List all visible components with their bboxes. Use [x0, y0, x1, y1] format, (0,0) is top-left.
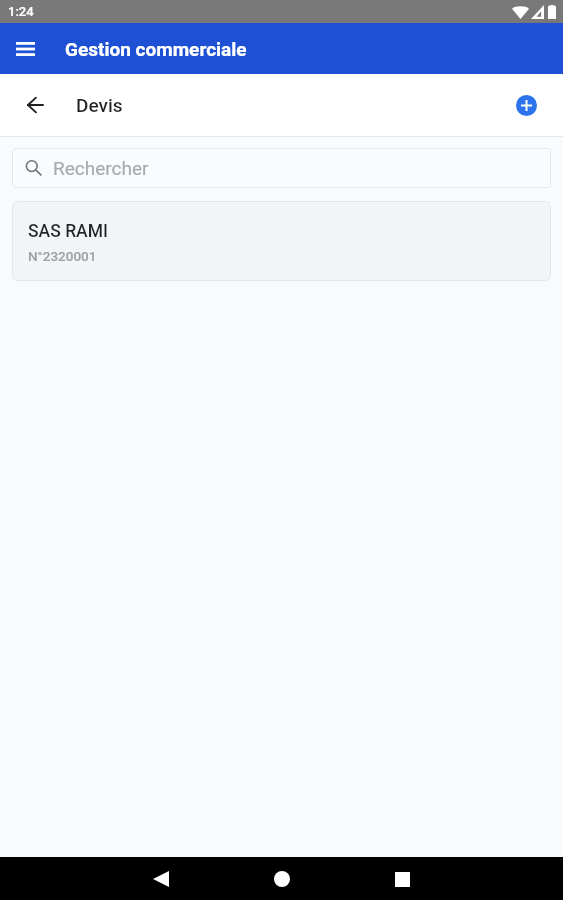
staticText: N°2320001	[28, 248, 97, 264]
button[interactable]: Rechercher	[12, 148, 551, 188]
staticText: Devis	[76, 94, 123, 116]
button[interactable]: Add	[516, 95, 537, 116]
staticText: Gestion commerciale	[65, 38, 247, 60]
staticText: Rechercher	[53, 157, 149, 179]
button[interactable]: SAS RAMI	[12, 201, 551, 281]
staticText: 1:24	[8, 4, 34, 19]
button[interactable]: Back	[17, 87, 53, 123]
button[interactable]: Back	[141, 859, 181, 899]
button[interactable]: Menu	[7, 31, 43, 67]
button[interactable]: Recents	[382, 859, 422, 899]
button[interactable]: Home	[262, 859, 302, 899]
staticText: SAS RAMI	[28, 221, 108, 242]
